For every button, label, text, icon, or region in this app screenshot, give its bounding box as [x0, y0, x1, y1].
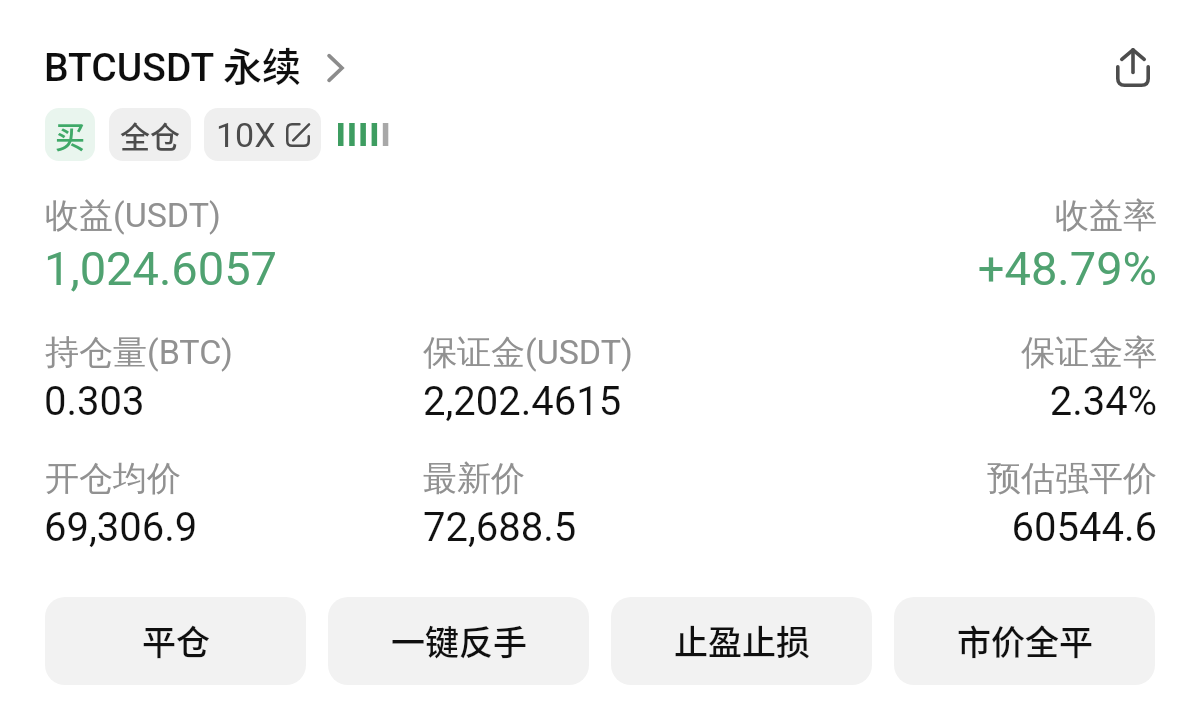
button[interactable]: 平仓	[45, 597, 306, 685]
staticText: 开仓均价	[45, 457, 181, 500]
button[interactable]: BTCUSDT 永续	[44, 36, 344, 92]
staticText: 10X	[216, 115, 276, 155]
staticText: 72,688.5	[423, 504, 577, 551]
button[interactable]: 市价全平	[894, 597, 1155, 685]
staticText: 全仓	[120, 113, 180, 156]
button[interactable]: 10X	[204, 108, 321, 161]
staticText: 0.303	[44, 378, 145, 425]
staticText: 2.34%	[1049, 378, 1157, 425]
staticText: 持仓量(BTC)	[45, 331, 233, 374]
button[interactable]: Share	[1100, 32, 1166, 102]
staticText: 市价全平	[957, 616, 1093, 665]
staticText: 收益(USDT)	[45, 194, 221, 237]
staticText: 保证金率	[1021, 331, 1157, 374]
staticText: 最新价	[423, 457, 525, 500]
staticText: 69,306.9	[44, 504, 198, 551]
staticText: 预估强平价	[987, 457, 1157, 500]
staticText: 1,024.6057	[44, 241, 277, 296]
button[interactable]: 止盈止损	[611, 597, 872, 685]
staticText: 保证金(USDT)	[423, 331, 633, 374]
staticText: 买	[55, 113, 85, 156]
staticText: BTCUSDT 永续	[44, 36, 302, 92]
staticText: +48.79%	[977, 241, 1157, 296]
staticText: 一键反手	[391, 616, 527, 665]
button[interactable]: 全仓	[109, 108, 191, 161]
button[interactable]: 一键反手	[328, 597, 589, 685]
staticText: 60544.6	[1011, 504, 1157, 551]
staticText: 止盈止损	[674, 616, 810, 665]
button[interactable]: 买	[45, 108, 95, 161]
staticText: 收益率	[1055, 194, 1157, 237]
staticText: 2,202.4615	[423, 378, 622, 425]
staticText: 平仓	[142, 616, 210, 665]
